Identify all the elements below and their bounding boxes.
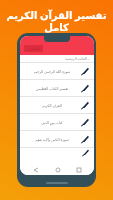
button[interactable]: سورة الناس والاية يفهم — [20, 131, 94, 147]
other: Edit — [81, 135, 89, 143]
staticText: سورة الله الرحمن الرحيم — [26, 69, 78, 74]
staticText: تفسير الكتاب العظيمي — [26, 86, 78, 91]
staticText: تفسير القرآن الكريم كامل — [0, 8, 113, 34]
button[interactable]: تفسير الكتاب العظيمي — [20, 80, 94, 96]
other: Edit — [81, 67, 89, 75]
other: Edit — [81, 101, 89, 109]
other: Edit — [81, 118, 89, 126]
button[interactable]: القرآن الكريم — [20, 97, 94, 113]
other: Edit — [82, 149, 89, 156]
staticText: سورة الناس والاية يفهم — [26, 137, 78, 142]
button[interactable]: Home — [52, 164, 63, 175]
staticText: القرآن الكريم — [26, 103, 78, 108]
button[interactable]: التفسير — [24, 45, 43, 52]
button[interactable]: سورة الله الرحمن الرحيم — [20, 63, 94, 79]
other: Edit — [81, 84, 89, 92]
button[interactable]: Back — [30, 164, 41, 175]
staticText: كتاب يوم الدين — [26, 120, 78, 125]
staticText: ـ القائمة الرئيسية — [65, 56, 89, 61]
button[interactable]: كتاب يوم الدين — [20, 114, 94, 130]
button[interactable]: Recents — [73, 164, 84, 175]
staticText: التفسير — [27, 46, 40, 51]
button[interactable]: Edit — [20, 148, 94, 157]
